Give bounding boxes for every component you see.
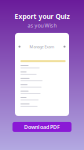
staticText: Export your Quiz <box>14 12 69 21</box>
button[interactable]: Download PDF <box>12 122 71 132</box>
staticText: Manage Exam <box>29 44 54 49</box>
staticText: as you Wish <box>27 22 56 29</box>
staticText: Download PDF <box>24 123 60 130</box>
